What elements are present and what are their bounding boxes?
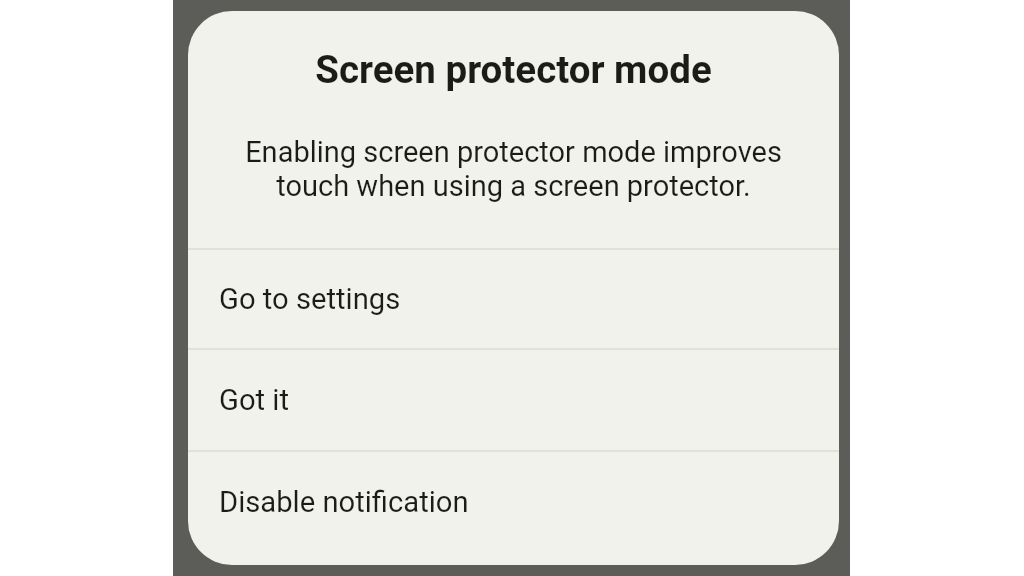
button[interactable]: Disable notification [188,452,839,552]
staticText: Screen protector mode [188,47,839,92]
button[interactable]: Got it [188,350,839,450]
staticText: Disable notification [219,485,469,519]
staticText: Go to settings [219,282,401,316]
staticText: Got it [219,383,289,417]
staticText: Enabling screen protector mode improves … [212,135,815,203]
button[interactable]: Go to settings [188,250,839,348]
